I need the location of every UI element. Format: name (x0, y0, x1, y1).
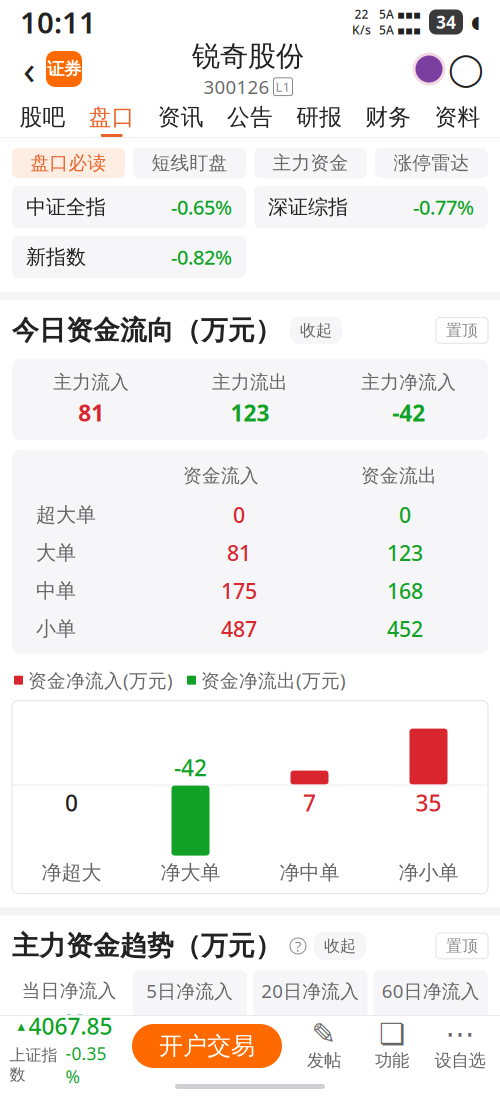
staticText: 175 (221, 577, 257, 605)
button[interactable]: 置顶 (436, 318, 488, 343)
button[interactable]: 20日净流入 (253, 970, 367, 1047)
staticText: 短线盯盘 (151, 151, 227, 174)
staticText: 功能 (375, 1050, 409, 1071)
button[interactable]: 收起 (314, 932, 366, 960)
staticText: -42 (392, 398, 425, 428)
staticText: -0.35% (65, 1042, 106, 1088)
button[interactable]: 置顶 (436, 933, 488, 959)
button[interactable]: 收起 (290, 317, 342, 344)
staticText: 收起 (300, 321, 332, 340)
staticText: -1419 (278, 1007, 342, 1039)
button[interactable]: Search (444, 47, 488, 91)
staticText: 超大单 (36, 502, 96, 527)
button[interactable]: 研报 (285, 94, 354, 137)
staticText: 5日净流入 (146, 978, 233, 1003)
button[interactable]: 深证综指 (254, 186, 488, 228)
staticText: L1 (275, 78, 290, 95)
button[interactable]: ▴ (6, 1011, 124, 1081)
staticText: 股吧 (20, 103, 66, 131)
staticText: 452 (387, 615, 423, 643)
staticText: 收起 (324, 936, 356, 956)
staticText: 涨停雷达 (393, 151, 469, 174)
staticText: 0 (65, 788, 78, 818)
staticText: 60日净流入 (382, 978, 480, 1003)
staticText: 主力净流入 (361, 371, 456, 394)
button[interactable]: Back (12, 47, 46, 91)
staticText: 净超大 (41, 860, 101, 885)
staticText: ◯ (448, 51, 484, 87)
staticText: ◖ (471, 12, 480, 32)
staticText: -0.77% (413, 194, 474, 220)
staticText: -0.65% (171, 194, 232, 220)
staticText: 123 (387, 539, 423, 567)
button[interactable]: 涨停雷达 (375, 148, 488, 178)
button[interactable]: 盘口必读 (12, 148, 125, 178)
button[interactable]: 证券 (46, 51, 82, 87)
button[interactable]: 短线盯盘 (133, 148, 246, 178)
button[interactable]: 公告 (215, 94, 284, 137)
staticText: 资金净流入(万元) (28, 668, 173, 693)
staticText: 证券 (47, 58, 81, 80)
staticText: ‹ (23, 42, 35, 95)
staticText: 财务 (365, 103, 411, 131)
staticText: 今日资金流向（万元） (12, 314, 282, 347)
staticText: ▴ (17, 1017, 24, 1034)
button[interactable]: 中证全指 (12, 186, 246, 228)
staticText: 主力资金趋势（万元） (12, 930, 282, 962)
staticText: 净小单 (398, 860, 458, 885)
staticText: K/s (352, 22, 371, 38)
staticText: -238 (165, 1007, 215, 1039)
staticText: 主力资金 (272, 151, 348, 174)
staticText: 研报 (296, 103, 342, 131)
button[interactable]: 股吧 (8, 94, 77, 137)
button[interactable]: 功能 (358, 1021, 426, 1071)
staticText: -6317 (399, 1007, 463, 1039)
button[interactable]: 60日净流入 (373, 970, 488, 1047)
staticText: 大单 (36, 540, 76, 565)
staticText: 开户交易 (159, 1031, 255, 1061)
button[interactable]: 盘口 (77, 94, 146, 137)
button[interactable]: AI Assistant (414, 54, 444, 84)
button[interactable]: 设自选 (426, 1021, 494, 1071)
staticText: 资金流入 (183, 464, 259, 487)
staticText: 4067.85 (28, 1011, 112, 1041)
staticText: 锐奇股份 (192, 39, 304, 73)
staticText: 当日净流入 (22, 979, 117, 1002)
staticText: 10:11 (20, 2, 96, 41)
staticText: 净中单 (279, 860, 339, 885)
staticText: ⋯ (445, 1017, 474, 1050)
staticText: -42 (51, 1006, 87, 1038)
staticText: 中证全指 (26, 195, 106, 219)
button[interactable]: 当日净流入 (12, 971, 126, 1046)
button[interactable]: 主力资金 (254, 148, 367, 178)
button[interactable]: 资料 (423, 94, 492, 137)
staticText: 300126 (203, 74, 269, 99)
staticText: 5A ▪▪▪ (379, 6, 421, 22)
staticText: 35 (415, 788, 441, 818)
staticText: 资讯 (158, 103, 204, 131)
staticText: ✎ (311, 1017, 336, 1050)
staticText: 新指数 (26, 245, 86, 269)
staticText: 5A ▪▪▪ (379, 22, 421, 38)
staticText: 上证指数 (9, 1045, 57, 1085)
button[interactable]: 发帖 (290, 1021, 358, 1071)
staticText: 小单 (36, 616, 76, 641)
staticText: 中单 (36, 578, 76, 603)
staticText: 7 (303, 788, 316, 818)
staticText: 123 (230, 398, 269, 428)
button[interactable]: 新指数 (12, 236, 246, 278)
staticText: 设自选 (434, 1050, 485, 1071)
staticText: 置顶 (446, 936, 478, 956)
staticText: 净大单 (160, 860, 220, 885)
staticText: -0.82% (171, 244, 232, 270)
staticText: 168 (387, 577, 423, 605)
button[interactable]: 5日净流入 (132, 970, 247, 1047)
button[interactable]: 开户交易 (132, 1024, 282, 1068)
staticText: ❏ (379, 1017, 405, 1050)
button[interactable]: 资讯 (146, 94, 215, 137)
staticText: 34 (436, 10, 456, 33)
staticText: 资金净流出(万元) (201, 668, 346, 693)
staticText: 主力流入 (53, 371, 129, 394)
staticText: 22 (354, 6, 368, 22)
button[interactable]: 财务 (354, 94, 423, 137)
